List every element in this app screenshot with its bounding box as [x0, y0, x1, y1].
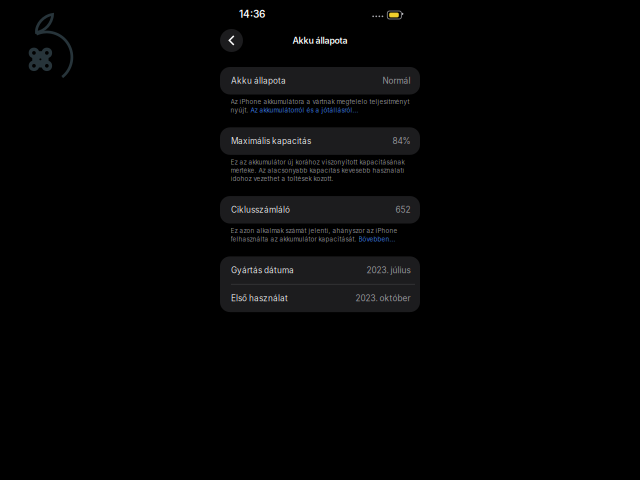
staticText: Első használat: [231, 293, 288, 303]
staticText: felhasználta az akkumulátor kapacitását.: [230, 235, 358, 243]
button[interactable]: Első használat: [220, 285, 420, 312]
staticText: Akku állapota: [292, 35, 347, 46]
button[interactable]: Bővebben...: [358, 235, 395, 243]
staticText: nyújt.: [230, 106, 250, 114]
staticText: Az akkumulátorról és a jótállásról...: [250, 106, 358, 114]
staticText: időhöz vezethet a töltések között.: [230, 175, 333, 183]
staticText: Akku állapota: [231, 76, 286, 86]
button[interactable]: Az akkumulátorról és a jótállásról...: [250, 106, 358, 114]
staticText: 2023. október: [355, 293, 410, 303]
staticText: 14:36: [239, 8, 265, 20]
staticText: mértéke. Az alacsonyabb kapacitás kevese…: [230, 167, 404, 174]
staticText: Maximális kapacitás: [231, 136, 311, 146]
button[interactable]: Maximális kapacitás: [220, 127, 420, 155]
staticText: 84%: [392, 136, 410, 146]
button[interactable]: Back: [220, 29, 243, 52]
staticText: Normál: [382, 76, 410, 86]
staticText: Ciklusszámláló: [231, 205, 290, 215]
staticText: Gyártás dátuma: [231, 265, 294, 275]
button[interactable]: Akku állapota: [220, 67, 420, 94]
staticText: Bővebben...: [358, 235, 395, 243]
staticText: Az iPhone akkumulátora a vártnak megfele…: [230, 98, 409, 106]
staticText: Ez azon alkalmak számát jelenti, ahánysz…: [230, 227, 397, 235]
staticText: Ez az akkumulátor új korához viszonyítot…: [230, 158, 404, 166]
button[interactable]: Ciklusszámláló: [220, 196, 420, 224]
staticText: 652: [395, 205, 410, 215]
staticText: 2023. július: [366, 265, 410, 275]
button[interactable]: Gyártás dátuma: [220, 256, 420, 284]
